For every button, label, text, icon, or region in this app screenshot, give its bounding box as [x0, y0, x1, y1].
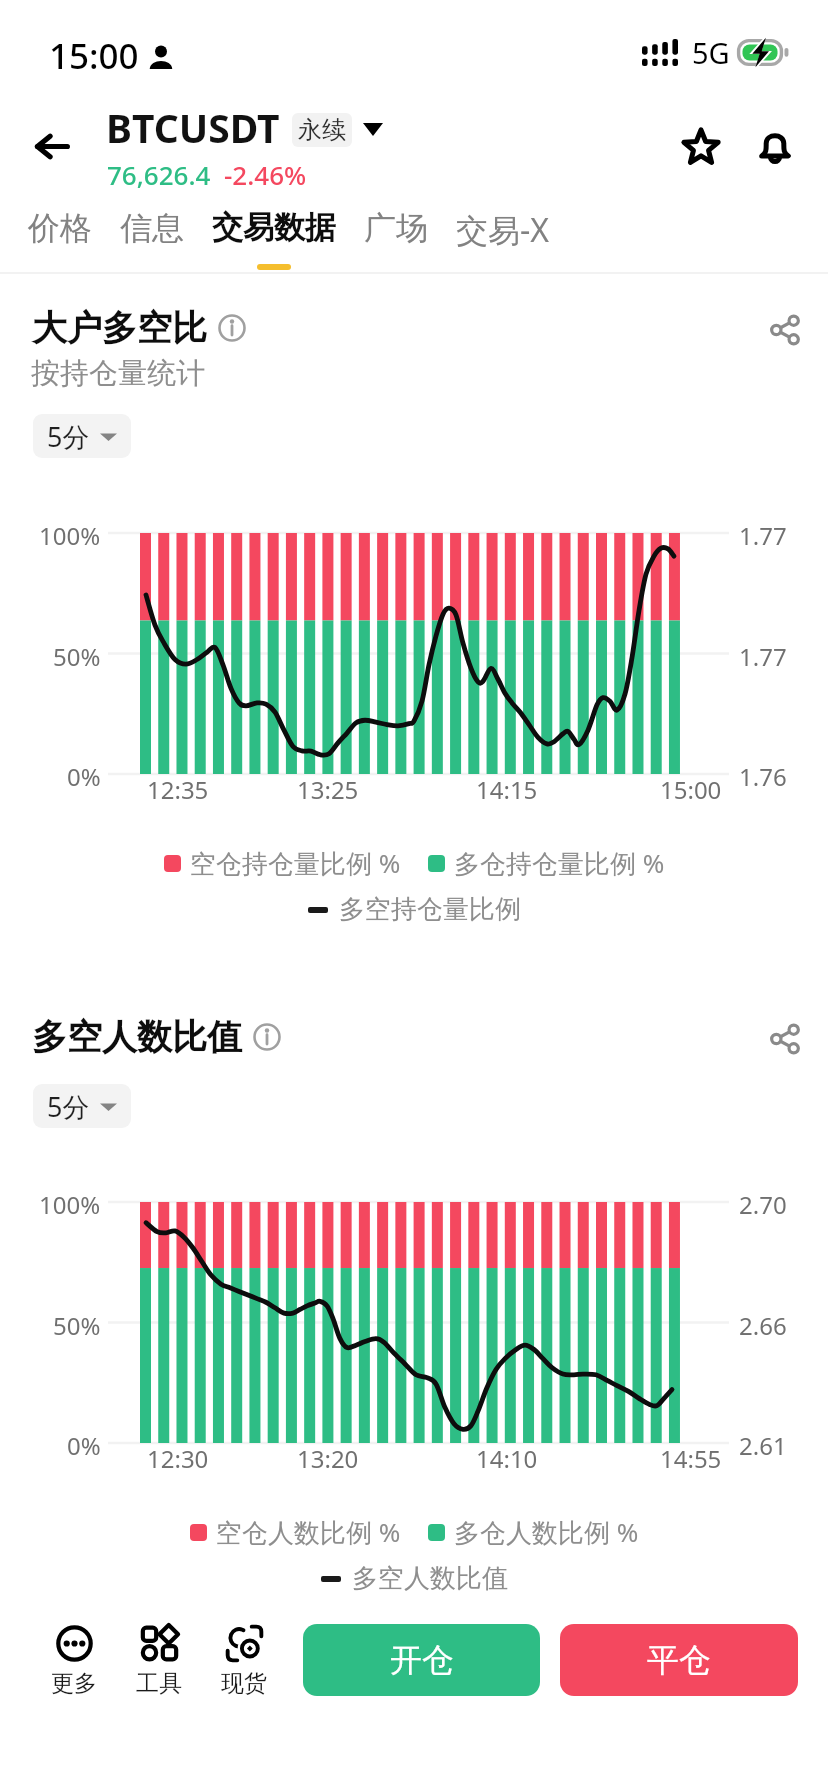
button[interactable]: Favorite — [669, 114, 733, 178]
staticText: 按持仓量统计 — [31, 355, 205, 392]
button[interactable]: 平仓 — [560, 1624, 798, 1696]
staticText: 1.77 — [739, 519, 787, 552]
staticText: 13:20 — [297, 1442, 359, 1475]
staticText: BTCUSDT — [106, 101, 280, 154]
staticText: 12:30 — [147, 1442, 209, 1475]
staticText: 大户多空比 — [32, 306, 207, 350]
button[interactable]: 信息 — [106, 208, 198, 270]
button[interactable]: 5分 — [33, 1084, 131, 1128]
staticText: 2.70 — [739, 1188, 787, 1221]
staticText: 12:35 — [147, 773, 209, 806]
staticText: 0% — [67, 760, 101, 793]
staticText: -2.46% — [224, 157, 307, 192]
staticText: 平仓 — [647, 1640, 711, 1680]
button[interactable]: Notifications — [743, 114, 807, 178]
button[interactable]: 5分 — [33, 414, 131, 458]
button[interactable]: More info — [218, 314, 246, 342]
staticText: 多空持仓量比例 — [339, 893, 521, 926]
staticText: 50% — [53, 640, 101, 673]
staticText: 空仓人数比例 % — [216, 1514, 401, 1550]
button[interactable]: Share — [763, 1017, 807, 1061]
staticText: 更多 — [51, 1669, 97, 1698]
staticText: 多仓持仓量比例 % — [454, 845, 665, 881]
staticText: 76,626.4 — [107, 157, 211, 192]
staticText: 价格 — [28, 208, 92, 248]
staticText: 13:25 — [297, 773, 359, 806]
staticText: 14:15 — [476, 773, 538, 806]
button[interactable]: 开仓 — [303, 1624, 540, 1696]
staticText: 现货 — [221, 1669, 267, 1698]
staticText: 100% — [39, 519, 101, 552]
button[interactable]: BTCUSDT — [106, 101, 383, 154]
staticText: 交易-X — [456, 208, 550, 252]
staticText: 5G — [692, 33, 730, 72]
staticText: 工具 — [136, 1669, 182, 1698]
button[interactable]: 交易-X — [442, 208, 564, 270]
staticText: 2.61 — [739, 1429, 787, 1462]
staticText: 1.76 — [739, 760, 787, 793]
staticText: 信息 — [120, 208, 184, 248]
staticText: 50% — [53, 1309, 101, 1342]
staticText: 14:10 — [476, 1442, 538, 1475]
staticText: 1.77 — [739, 640, 787, 673]
staticText: 14:55 — [660, 1442, 722, 1475]
button[interactable]: 更多 — [32, 1625, 116, 1698]
staticText: 15:00 — [660, 773, 722, 806]
staticText: 交易数据 — [212, 208, 336, 247]
button[interactable]: 现货 — [202, 1625, 286, 1698]
staticText: 空仓持仓量比例 % — [190, 845, 401, 881]
staticText: 多空人数比值 — [352, 1562, 508, 1595]
staticText: 永续 — [298, 115, 346, 145]
staticText: 2.66 — [739, 1309, 787, 1342]
staticText: 100% — [39, 1188, 101, 1221]
staticText: 5分 — [47, 418, 90, 455]
button[interactable]: 工具 — [117, 1625, 201, 1698]
button[interactable]: 价格 — [14, 208, 106, 270]
staticText: 开仓 — [390, 1640, 454, 1680]
staticText: 5分 — [47, 1088, 90, 1125]
button[interactable]: Back — [20, 113, 84, 177]
button[interactable]: 广场 — [350, 208, 442, 270]
staticText: 0% — [67, 1429, 101, 1462]
button[interactable]: More info — [253, 1023, 281, 1051]
staticText: 广场 — [364, 208, 428, 248]
staticText: 15:00 — [49, 32, 139, 80]
staticText: 多仓人数比例 % — [454, 1514, 639, 1550]
button[interactable]: Share — [763, 308, 807, 352]
button[interactable]: 交易数据 — [198, 208, 350, 270]
staticText: 多空人数比值 — [32, 1015, 242, 1059]
